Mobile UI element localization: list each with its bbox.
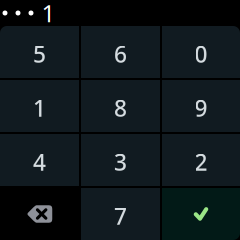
- staticText: 1: [41, 0, 55, 29]
- button[interactable]: Delete: [0, 188, 79, 240]
- button[interactable]: 2: [162, 134, 240, 186]
- button[interactable]: Confirm: [162, 188, 240, 240]
- button[interactable]: 6: [81, 26, 160, 78]
- staticText: 3: [114, 147, 127, 177]
- staticText: 7: [114, 201, 127, 231]
- staticText: 5: [33, 39, 46, 69]
- staticText: 1: [33, 93, 46, 123]
- button[interactable]: 1: [0, 80, 79, 132]
- staticText: 4: [33, 147, 46, 177]
- button[interactable]: 9: [162, 80, 240, 132]
- button[interactable]: 3: [81, 134, 160, 186]
- button[interactable]: 5: [0, 26, 79, 78]
- button[interactable]: 4: [0, 134, 79, 186]
- button[interactable]: 0: [162, 26, 240, 78]
- button[interactable]: 7: [81, 188, 160, 240]
- staticText: 9: [194, 93, 207, 123]
- staticText: 2: [194, 147, 207, 177]
- staticText: 0: [194, 39, 207, 69]
- staticText: 6: [114, 39, 127, 69]
- button[interactable]: 8: [81, 80, 160, 132]
- staticText: 8: [114, 93, 127, 123]
